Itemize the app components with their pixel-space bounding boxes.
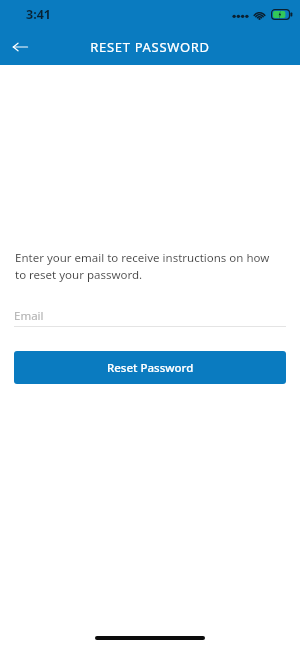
staticText: Enter your email to receive instructions… <box>15 250 278 282</box>
button[interactable]: Email <box>14 305 286 327</box>
staticText: RESET PASSWORD <box>90 38 210 56</box>
staticText: Email <box>14 308 44 324</box>
staticText: Reset Password <box>107 360 194 376</box>
button[interactable]: Back <box>0 28 40 65</box>
button[interactable]: Reset Password <box>14 351 286 384</box>
staticText: 3:41 <box>26 6 51 23</box>
